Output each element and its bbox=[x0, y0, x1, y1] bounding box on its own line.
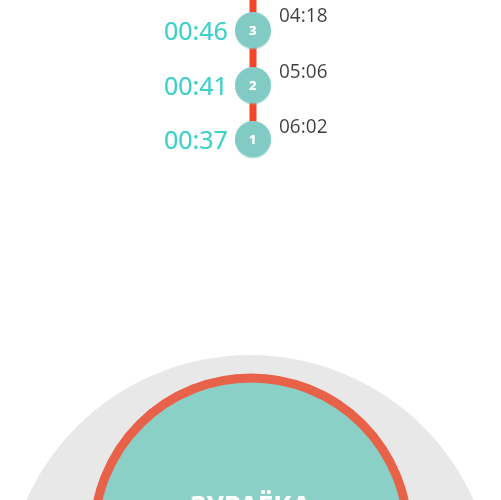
button[interactable]: Lap times timeline bbox=[0, 0, 501, 500]
